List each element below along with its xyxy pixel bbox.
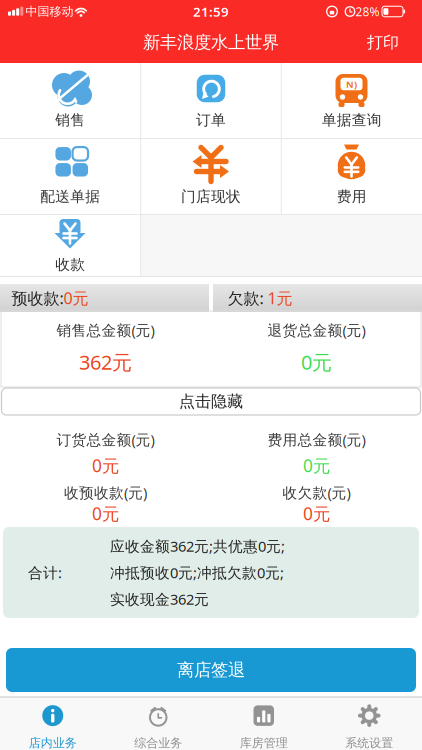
staticText: 28% xyxy=(355,3,379,19)
button[interactable]: 库房管理 xyxy=(211,700,316,750)
staticText: N) xyxy=(346,78,357,90)
staticText: 应收金额362元;共优惠0元; xyxy=(110,536,285,556)
staticText: 0元 xyxy=(92,502,119,525)
button[interactable]: 综合业务 xyxy=(106,700,211,750)
button[interactable]: 门店现状 xyxy=(141,139,281,213)
staticText: 费用 xyxy=(337,187,367,205)
staticText: 库房管理 xyxy=(240,736,288,750)
button[interactable]: 收款 xyxy=(0,208,140,282)
staticText: 综合业务 xyxy=(134,736,182,750)
staticText: 欠款: xyxy=(227,287,267,309)
staticText: 1元 xyxy=(267,287,292,309)
staticText: 21:59 xyxy=(193,3,229,20)
button[interactable]: 费用 xyxy=(282,139,422,213)
button[interactable]: 系统设置 xyxy=(317,700,422,750)
staticText: 收款 xyxy=(55,255,85,273)
button[interactable]: 离店签退 xyxy=(6,648,416,692)
staticText: 中国移动 xyxy=(25,4,73,19)
staticText: 0元 xyxy=(63,287,88,309)
staticText: 单据查询 xyxy=(322,111,382,129)
staticText: 362元 xyxy=(79,349,132,375)
staticText: 销售总金额(元) xyxy=(56,320,154,340)
staticText: 0元 xyxy=(303,454,330,477)
staticText: 冲抵预收0元;冲抵欠款0元; xyxy=(110,563,284,582)
staticText: 配送单据 xyxy=(40,187,100,205)
button[interactable]: 单据查询 xyxy=(282,64,422,138)
staticText: 预收款: xyxy=(11,287,63,309)
staticText: 离店签退 xyxy=(177,659,245,681)
staticText: 0元 xyxy=(301,349,332,375)
staticText: 收预收款(元) xyxy=(64,483,147,502)
staticText: 门店现状 xyxy=(181,187,241,205)
staticText: 订货总金额(元) xyxy=(56,430,154,449)
staticText: 合计: xyxy=(28,563,62,582)
staticText: 打印 xyxy=(367,33,399,52)
button[interactable]: 店内业务 xyxy=(0,700,105,750)
button[interactable]: 订单 xyxy=(141,64,281,138)
button[interactable]: 销售 xyxy=(0,64,140,138)
staticText: 系统设置 xyxy=(345,736,393,750)
button[interactable]: 打印 xyxy=(353,23,413,61)
button[interactable]: 点击隐藏 xyxy=(1,388,420,415)
staticText: 实收现金362元 xyxy=(110,589,209,609)
staticText: 收欠款(元) xyxy=(282,483,350,502)
staticText: 0元 xyxy=(92,454,119,477)
staticText: 销售 xyxy=(55,111,85,129)
staticText: 费用总金额(元) xyxy=(267,430,365,449)
staticText: 退货总金额(元) xyxy=(267,320,365,340)
staticText: 新丰浪度水上世界 xyxy=(143,32,279,53)
button[interactable]: 配送单据 xyxy=(0,139,140,213)
staticText: 0元 xyxy=(303,502,330,525)
staticText: 点击隐藏 xyxy=(179,392,243,411)
staticText: 店内业务 xyxy=(29,736,77,750)
staticText: 订单 xyxy=(196,111,226,129)
